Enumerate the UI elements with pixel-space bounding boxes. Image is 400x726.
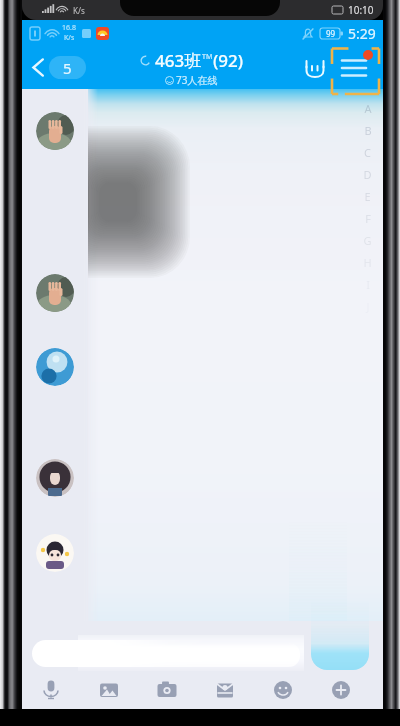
button[interactable]: Emoji bbox=[254, 673, 312, 707]
staticText: F bbox=[365, 211, 371, 233]
staticText: 10:10 bbox=[348, 3, 374, 17]
button[interactable]: Menu bbox=[334, 48, 374, 88]
button[interactable]: Contact avatar bbox=[36, 459, 74, 497]
staticText: C bbox=[364, 145, 371, 167]
button[interactable]: Message input bbox=[32, 635, 304, 671]
staticText: 5:29 bbox=[348, 24, 376, 43]
button[interactable]: Camera bbox=[138, 673, 196, 707]
button[interactable]: Contact avatar bbox=[36, 534, 74, 572]
staticText: K/s bbox=[73, 5, 85, 16]
button[interactable]: Contact avatar bbox=[36, 112, 74, 150]
staticText: 16.8 bbox=[62, 23, 76, 33]
staticText: G bbox=[363, 233, 372, 255]
staticText: K/s bbox=[64, 33, 75, 43]
staticText: A bbox=[364, 101, 372, 123]
button[interactable]: Back bbox=[28, 50, 90, 85]
staticText: (92) bbox=[213, 49, 244, 72]
staticText: D bbox=[363, 167, 372, 189]
staticText: 99 bbox=[326, 28, 336, 39]
staticText: 463班 bbox=[155, 49, 202, 72]
button[interactable]: Voice bbox=[22, 673, 80, 707]
button[interactable]: More bbox=[312, 673, 370, 707]
button[interactable]: Gift bbox=[196, 673, 254, 707]
button[interactable]: Contact avatar bbox=[36, 274, 74, 312]
staticText: H bbox=[363, 255, 372, 277]
staticText: TM bbox=[202, 52, 213, 62]
staticText: B bbox=[364, 123, 372, 145]
button[interactable]: Photos bbox=[80, 673, 138, 707]
button[interactable]: Contact avatar bbox=[36, 348, 74, 386]
staticText: E bbox=[364, 189, 371, 211]
staticText: 73人在线 bbox=[176, 73, 218, 87]
button[interactable]: Gesture bbox=[299, 51, 333, 85]
staticText: 5 bbox=[63, 58, 72, 78]
